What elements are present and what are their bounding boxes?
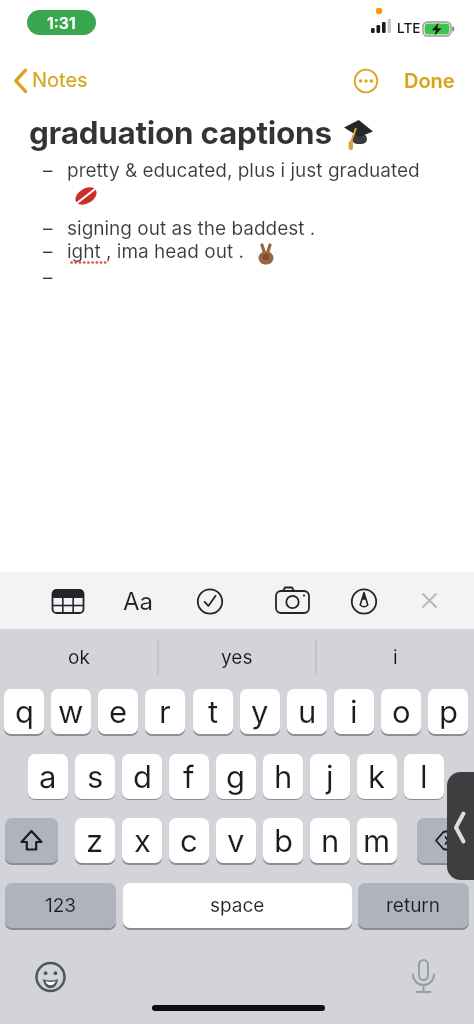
staticText: p (439, 693, 458, 731)
button[interactable]: space (123, 883, 352, 928)
staticText: ok (68, 646, 90, 669)
staticText: o (392, 693, 411, 731)
button[interactable]: i (316, 629, 474, 686)
staticText: x (134, 822, 151, 860)
button[interactable] (404, 952, 444, 1000)
staticText: – (43, 240, 53, 263)
button[interactable]: r (145, 689, 185, 734)
staticText: e (109, 693, 128, 731)
button[interactable]: l (404, 754, 444, 799)
staticText: q (15, 693, 34, 731)
staticText: – (43, 159, 53, 182)
staticText: d (133, 758, 152, 796)
button[interactable]: t (193, 689, 233, 734)
staticText: pretty & educated, plus i just graduated (67, 159, 420, 182)
button[interactable] (272, 581, 314, 621)
button[interactable]: d (122, 754, 162, 799)
button[interactable]: Aa (116, 581, 160, 621)
button[interactable]: return (358, 883, 469, 928)
button[interactable]: g (216, 754, 256, 799)
staticText: ight , ima head out . (67, 240, 244, 263)
staticText: y (251, 693, 269, 731)
button[interactable] (5, 818, 58, 863)
staticText: t (208, 693, 219, 731)
button[interactable]: s (75, 754, 115, 799)
staticText: Notes (32, 68, 88, 92)
staticText: j (326, 758, 334, 796)
button[interactable]: 1:31 (27, 10, 96, 35)
staticText: LTE (397, 20, 421, 36)
button[interactable] (412, 583, 448, 619)
staticText: 1:31 (47, 13, 76, 32)
button[interactable]: o (381, 689, 421, 734)
button[interactable] (447, 772, 474, 880)
staticText: graduation captions (29, 113, 332, 151)
staticText: Done (404, 69, 455, 93)
button[interactable]: p (428, 689, 468, 734)
staticText: yes (221, 646, 253, 669)
button[interactable]: m (357, 818, 397, 863)
button[interactable]: c (169, 818, 209, 863)
button[interactable]: k (357, 754, 397, 799)
staticText: – (43, 266, 53, 289)
button[interactable]: b (263, 818, 303, 863)
staticText: space (210, 894, 265, 917)
staticText: i (393, 646, 398, 669)
button[interactable]: j (310, 754, 350, 799)
staticText: w (58, 693, 84, 731)
button[interactable]: u (287, 689, 327, 734)
button[interactable]: q (4, 689, 44, 734)
button[interactable]: 123 (5, 883, 116, 928)
staticText: m (363, 822, 391, 860)
button[interactable]: yes (158, 629, 316, 686)
button[interactable]: Done (398, 62, 460, 100)
staticText: n (321, 822, 340, 860)
staticText: r (159, 693, 171, 731)
button[interactable] (417, 818, 470, 863)
button[interactable] (31, 957, 71, 997)
staticText: signing out as the baddest . (67, 217, 316, 240)
staticText: l (420, 758, 428, 796)
button[interactable]: ok (0, 629, 158, 686)
button[interactable] (190, 581, 230, 621)
staticText: b (274, 822, 293, 860)
button[interactable]: i (334, 689, 374, 734)
button[interactable]: n (310, 818, 350, 863)
staticText: h (274, 758, 293, 796)
staticText: return (386, 894, 441, 917)
staticText: – (43, 217, 53, 240)
button[interactable]: x (122, 818, 162, 863)
staticText: c (180, 822, 198, 860)
button[interactable] (344, 581, 384, 621)
staticText: 123 (45, 894, 77, 917)
staticText: k (368, 758, 386, 796)
button[interactable]: y (240, 689, 280, 734)
button[interactable] (348, 63, 384, 99)
staticText: u (298, 693, 317, 731)
button[interactable]: Notes (8, 62, 112, 100)
staticText: g (226, 758, 246, 796)
button[interactable]: h (263, 754, 303, 799)
staticText: Aa (123, 587, 154, 616)
staticText: i (350, 693, 358, 731)
staticText: f (183, 758, 195, 796)
staticText: s (87, 758, 104, 796)
button[interactable]: w (51, 689, 91, 734)
staticText: a (39, 758, 57, 796)
button[interactable]: a (28, 754, 68, 799)
button[interactable]: v (216, 818, 256, 863)
staticText: z (86, 822, 104, 860)
button[interactable]: e (98, 689, 138, 734)
button[interactable]: z (75, 818, 115, 863)
staticText: v (227, 822, 245, 860)
button[interactable] (48, 581, 88, 621)
button[interactable]: f (169, 754, 209, 799)
